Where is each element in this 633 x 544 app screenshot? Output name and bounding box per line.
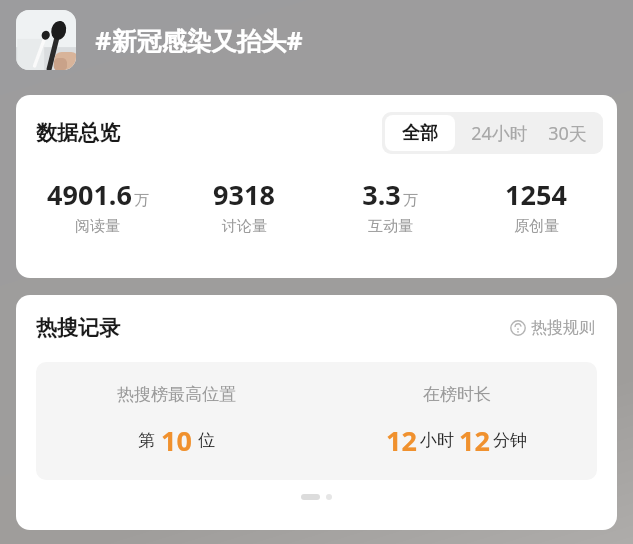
staticText: 12 <box>459 422 490 459</box>
staticText: 数据总览 <box>36 120 120 146</box>
button[interactable]: 24小时 <box>458 112 541 154</box>
button[interactable]: 全部 <box>385 115 455 151</box>
staticText: 3.3 <box>362 176 401 213</box>
button[interactable]: 热搜规则 <box>508 316 597 340</box>
staticText: 互动量 <box>368 217 413 236</box>
staticText: 热搜记录 <box>36 315 120 341</box>
staticText: 阅读量 <box>75 217 120 236</box>
staticText: 1254 <box>505 176 567 213</box>
staticText: 热搜规则 <box>531 318 595 338</box>
staticText: 讨论量 <box>222 217 267 236</box>
staticText: 9318 <box>213 176 275 213</box>
staticText: 全部 <box>402 122 438 145</box>
staticText: 10 <box>161 422 192 459</box>
staticText: 原创量 <box>514 217 559 236</box>
staticText: 12 <box>386 422 417 459</box>
staticText: 小时 <box>420 430 454 451</box>
staticText: 万 <box>134 191 149 210</box>
staticText: 热搜榜最高位置 <box>117 384 236 405</box>
button[interactable]: 3.3 <box>317 176 463 236</box>
button[interactable]: 4901.6 <box>24 176 171 236</box>
staticText: 分钟 <box>493 430 527 451</box>
staticText: #新冠感染又抬头# <box>95 23 303 57</box>
button[interactable]: 30天 <box>541 112 603 154</box>
button[interactable]: 1254 <box>463 176 609 236</box>
staticText: 30天 <box>548 121 587 146</box>
staticText: 位 <box>198 430 215 451</box>
staticText: 24小时 <box>471 121 528 146</box>
staticText: 第 <box>138 430 155 451</box>
button[interactable]: 话题配图 <box>16 10 76 70</box>
staticText: 万 <box>403 191 418 210</box>
button[interactable]: 9318 <box>171 176 317 236</box>
staticText: 4901.6 <box>47 176 132 213</box>
staticText: 在榜时长 <box>423 384 491 405</box>
